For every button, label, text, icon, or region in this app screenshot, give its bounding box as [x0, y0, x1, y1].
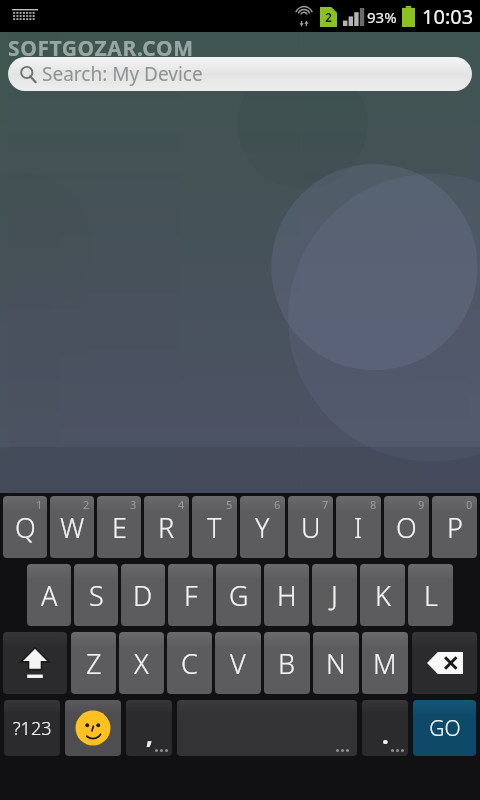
- button[interactable]: F: [168, 564, 213, 626]
- staticText: 6: [274, 497, 281, 512]
- button[interactable]: J: [312, 564, 357, 626]
- staticText: R: [158, 509, 175, 546]
- staticText: 93%: [367, 7, 397, 27]
- button[interactable]: O: [384, 496, 429, 558]
- staticText: Q: [15, 509, 36, 546]
- staticText: W: [60, 509, 85, 546]
- staticText: O: [396, 509, 417, 546]
- staticText: B: [278, 645, 296, 682]
- staticText: 3: [130, 497, 137, 512]
- staticText: A: [41, 577, 58, 614]
- staticText: ?123: [13, 716, 52, 741]
- staticText: D: [133, 577, 153, 614]
- button[interactable]: Emoji: [65, 700, 121, 756]
- button[interactable]: Y: [240, 496, 285, 558]
- staticText: 0: [466, 497, 473, 512]
- staticText: 5: [226, 497, 233, 512]
- staticText: GO: [429, 714, 461, 743]
- staticText: X: [134, 645, 149, 682]
- button[interactable]: L: [408, 564, 453, 626]
- staticText: E: [112, 509, 127, 546]
- staticText: M: [373, 645, 397, 682]
- button[interactable]: G: [216, 564, 261, 626]
- staticText: ,: [146, 718, 153, 751]
- button[interactable]: Search: My Device: [8, 57, 472, 91]
- button[interactable]: D: [121, 564, 165, 626]
- staticText: C: [181, 645, 198, 682]
- button[interactable]: ?123: [4, 700, 60, 756]
- staticText: S: [89, 577, 104, 614]
- button[interactable]: C: [167, 632, 212, 694]
- staticText: J: [331, 577, 338, 614]
- staticText: Z: [86, 645, 102, 682]
- button[interactable]: M: [362, 632, 408, 694]
- staticText: 2: [83, 497, 90, 512]
- button[interactable]: Shift: [3, 632, 67, 694]
- button[interactable]: .: [362, 700, 408, 756]
- button[interactable]: Z: [71, 632, 116, 694]
- button[interactable]: W: [50, 496, 94, 558]
- staticText: 9: [418, 497, 425, 512]
- button[interactable]: ,: [126, 700, 172, 756]
- staticText: .: [382, 718, 389, 751]
- button[interactable]: K: [360, 564, 405, 626]
- staticText: SOFTGOZAR.COM: [8, 34, 194, 63]
- button[interactable]: N: [313, 632, 359, 694]
- staticText: G: [229, 577, 249, 614]
- staticText: I: [354, 509, 363, 546]
- staticText: N: [326, 645, 346, 682]
- staticText: T: [207, 509, 222, 546]
- staticText: 2: [325, 9, 332, 25]
- button[interactable]: T: [192, 496, 237, 558]
- button[interactable]: E: [97, 496, 141, 558]
- staticText: Search: My Device: [42, 61, 203, 87]
- staticText: 7: [322, 497, 329, 512]
- staticText: K: [375, 577, 391, 614]
- button[interactable]: X: [119, 632, 164, 694]
- staticText: 4: [178, 497, 185, 512]
- staticText: U: [301, 509, 321, 546]
- staticText: F: [184, 577, 198, 614]
- button[interactable]: GO: [413, 700, 476, 756]
- button[interactable]: Space: [177, 700, 357, 756]
- staticText: H: [277, 577, 297, 614]
- staticText: 1: [36, 497, 43, 512]
- staticText: 8: [370, 497, 377, 512]
- button[interactable]: R: [144, 496, 189, 558]
- staticText: P: [447, 509, 463, 546]
- button[interactable]: Q: [3, 496, 47, 558]
- button[interactable]: I: [336, 496, 381, 558]
- button[interactable]: V: [215, 632, 261, 694]
- button[interactable]: S: [74, 564, 118, 626]
- button[interactable]: A: [27, 564, 71, 626]
- staticText: 10:03: [422, 3, 474, 30]
- button[interactable]: P: [432, 496, 477, 558]
- button[interactable]: B: [264, 632, 310, 694]
- staticText: V: [230, 645, 246, 682]
- button[interactable]: U: [288, 496, 333, 558]
- button[interactable]: H: [264, 564, 309, 626]
- staticText: L: [424, 577, 438, 614]
- staticText: Y: [255, 509, 270, 546]
- button[interactable]: Backspace: [412, 632, 477, 694]
